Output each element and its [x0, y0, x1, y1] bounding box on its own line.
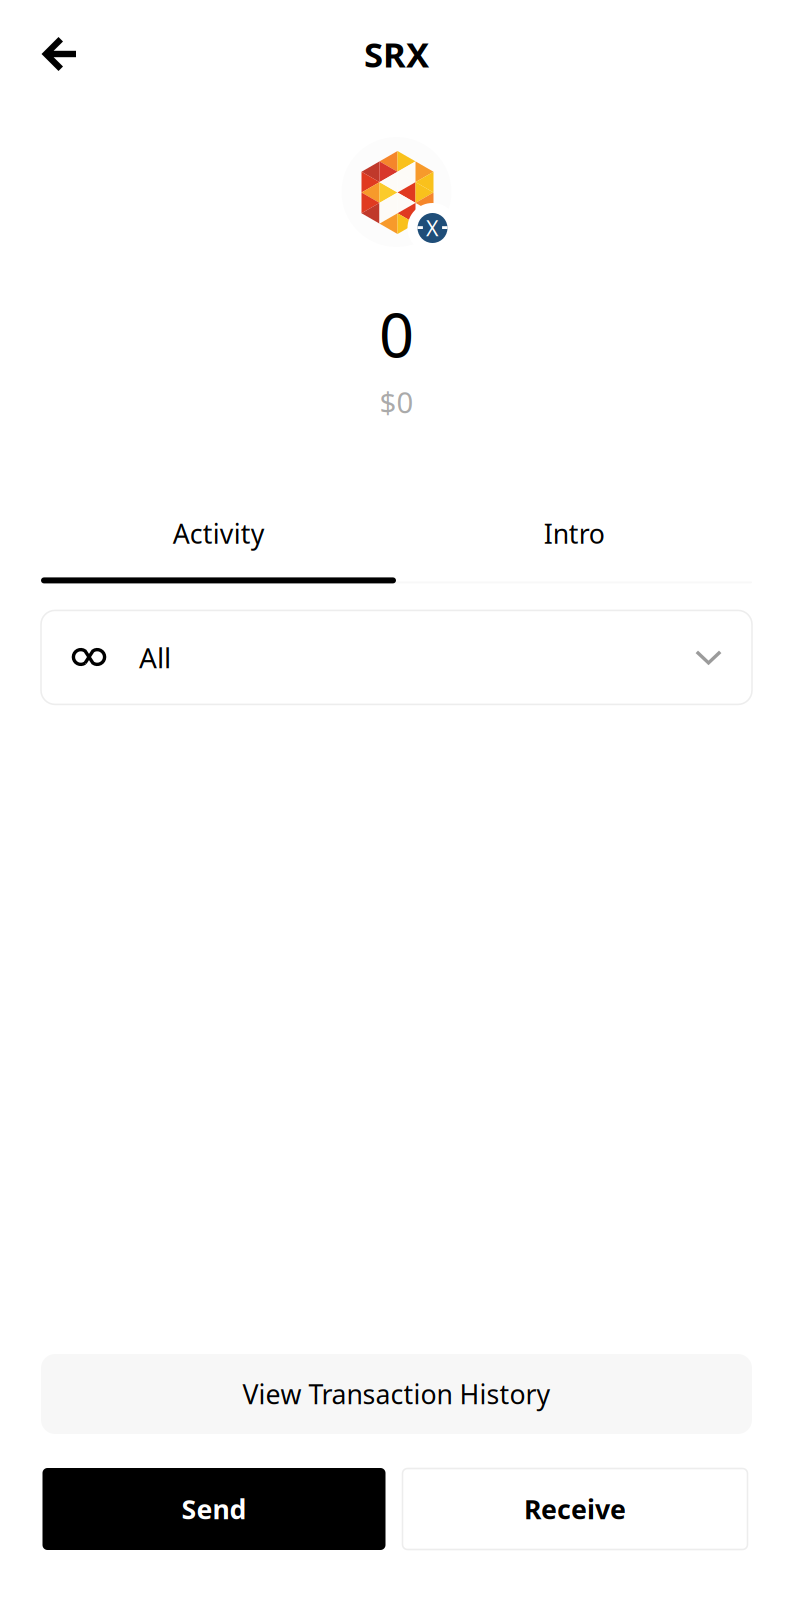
- staticText: Intro: [544, 516, 605, 551]
- button[interactable]: Send: [42, 1468, 385, 1550]
- button[interactable]: Back: [34, 27, 88, 81]
- staticText: View Transaction History: [242, 1376, 550, 1412]
- button[interactable]: All: [41, 610, 752, 704]
- button[interactable]: Receive: [402, 1468, 747, 1549]
- staticText: Send: [181, 1491, 246, 1527]
- button[interactable]: View Transaction History: [41, 1354, 752, 1434]
- staticText: X: [426, 214, 439, 242]
- staticText: 0: [379, 293, 414, 374]
- button[interactable]: Intro: [396, 511, 752, 555]
- staticText: $0: [379, 382, 413, 421]
- staticText: Receive: [524, 1491, 626, 1527]
- button[interactable]: Activity: [41, 511, 396, 555]
- staticText: Activity: [173, 516, 265, 551]
- staticText: All: [139, 639, 171, 676]
- staticText: SRX: [364, 31, 429, 77]
